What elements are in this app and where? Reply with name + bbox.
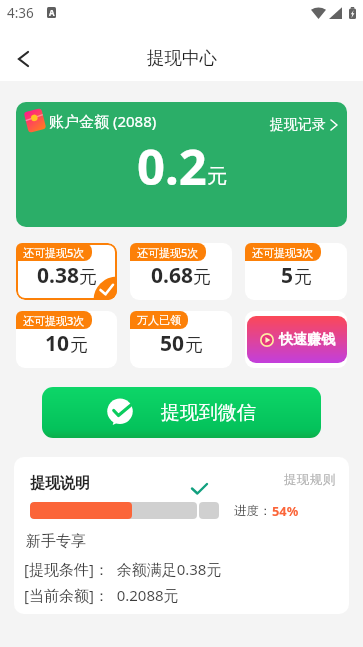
staticText: 还可提现5次 (23, 245, 85, 260)
staticText: 元 (79, 266, 97, 289)
staticText: 0.2 (137, 133, 207, 200)
staticText: 54% (272, 502, 299, 519)
staticText: 还可提现3次 (252, 245, 314, 260)
button[interactable]: Back (6, 41, 41, 76)
button[interactable]: 0.38 (16, 243, 117, 300)
staticText: 元 (70, 334, 88, 357)
staticText: 提现到微信 (161, 401, 256, 425)
button[interactable]: 5 (245, 243, 347, 300)
button[interactable]: 账户金额 (2088) (16, 102, 347, 227)
staticText: 0.38 (37, 261, 79, 290)
button[interactable]: 提现记录 (268, 114, 339, 136)
staticText: A (49, 7, 55, 18)
staticText: 提现说明 (30, 474, 90, 493)
staticText: 0.68 (151, 261, 193, 290)
staticText: 还可提现5次 (137, 245, 199, 260)
staticText: 进度： (234, 503, 272, 519)
button[interactable]: 50 (130, 311, 232, 368)
staticText: 还可提现3次 (23, 313, 85, 328)
staticText: 快速赚钱 (279, 331, 335, 349)
staticText: [提现条件]： 余额满足0.38元 (24, 559, 222, 579)
button[interactable]: 提现到微信 (42, 387, 321, 438)
staticText: 元 (193, 266, 211, 289)
staticText: 4:36 (7, 4, 34, 22)
staticText: 10 (45, 329, 70, 358)
staticText: 提现记录 (270, 116, 326, 134)
staticText: 50 (160, 329, 185, 358)
staticText: 万人已领 (137, 313, 181, 327)
button[interactable]: 提现规则 (284, 472, 336, 488)
staticText: 元 (207, 164, 227, 189)
button[interactable]: 0.68 (130, 243, 232, 300)
staticText: 新手专享 (26, 532, 86, 551)
staticText: 元 (185, 334, 203, 357)
staticText: 元 (294, 266, 312, 289)
button[interactable]: 快速赚钱 (247, 316, 347, 363)
button[interactable]: 10 (16, 311, 117, 368)
staticText: 提现中心 (147, 47, 217, 69)
staticText: [当前余额]： 0.2088元 (24, 585, 179, 605)
staticText: 5 (281, 261, 294, 290)
staticText: 账户金额 (2088) (49, 111, 157, 131)
